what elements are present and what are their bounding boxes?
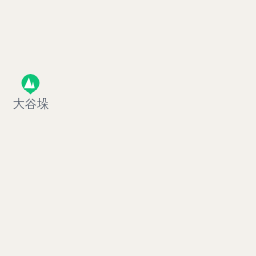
staticText: 大谷垛 xyxy=(13,96,49,111)
other: 大谷垛 park marker xyxy=(5,74,55,96)
button[interactable]: 大谷垛 park marker xyxy=(5,74,55,111)
